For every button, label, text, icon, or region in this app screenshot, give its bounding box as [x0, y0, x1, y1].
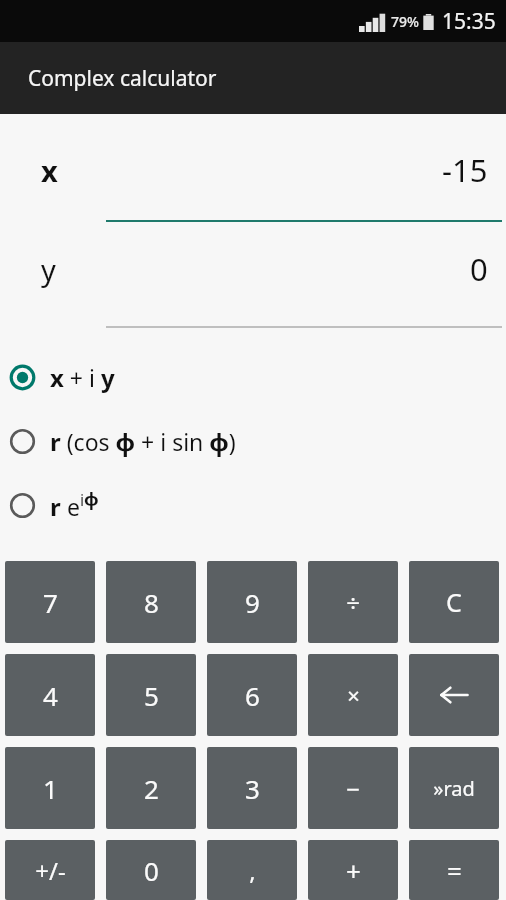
staticText: 0 — [144, 853, 159, 888]
staticText: 8 — [144, 585, 159, 620]
staticText: 2 — [144, 771, 159, 806]
staticText: 3 — [245, 771, 260, 806]
button[interactable]: Minus — [308, 747, 398, 829]
button[interactable]: 3 — [207, 747, 297, 829]
staticText: y — [41, 250, 56, 289]
button[interactable]: r (cos φ + i sin φ) — [0, 409, 506, 473]
staticText: = — [447, 853, 462, 888]
staticText: C — [446, 585, 462, 619]
button[interactable]: 0 — [106, 840, 196, 900]
button[interactable]: r eiφ — [0, 473, 506, 537]
button[interactable]: 9 — [207, 561, 297, 643]
button[interactable]: y — [0, 222, 506, 328]
staticText: -15 — [442, 149, 488, 191]
button[interactable]: Plus — [308, 840, 398, 900]
staticText: x + i y — [50, 361, 115, 394]
button[interactable]: Toggle sign — [5, 840, 95, 900]
button[interactable]: 4 — [5, 654, 95, 736]
staticText: Complex calculator — [28, 64, 217, 93]
button[interactable]: Clear — [409, 561, 499, 643]
staticText: 79% — [391, 12, 419, 31]
button[interactable]: Multiply — [308, 654, 398, 736]
staticText: − — [346, 772, 360, 805]
button[interactable]: Backspace — [409, 654, 499, 736]
button[interactable]: 8 — [106, 561, 196, 643]
staticText: r eiφ — [50, 487, 99, 523]
button[interactable]: 1 — [5, 747, 95, 829]
staticText: 15:35 — [442, 7, 496, 36]
staticText: 5 — [144, 678, 159, 713]
staticText: 4 — [43, 678, 58, 713]
button[interactable]: 6 — [207, 654, 297, 736]
button[interactable]: Equals — [409, 840, 499, 900]
staticText: 6 — [245, 678, 260, 713]
staticText: »rad — [433, 775, 475, 802]
staticText: 0 — [470, 248, 488, 290]
staticText: 7 — [43, 585, 58, 620]
staticText: 1 — [43, 771, 58, 806]
staticText: 9 — [245, 585, 260, 620]
staticText: x — [41, 151, 58, 190]
staticText: + — [346, 853, 361, 888]
staticText: , — [249, 854, 256, 887]
button[interactable]: 5 — [106, 654, 196, 736]
button[interactable]: x + i y — [0, 345, 506, 409]
staticText: +/- — [35, 854, 66, 887]
button[interactable]: Divide — [308, 561, 398, 643]
staticText: × — [347, 680, 360, 710]
staticText: r (cos φ + i sin φ) — [50, 425, 236, 458]
button[interactable]: x — [0, 130, 506, 222]
button[interactable]: Decimal separator — [207, 840, 297, 900]
button[interactable]: 2 — [106, 747, 196, 829]
button[interactable]: Convert to radians — [409, 747, 499, 829]
staticText: ÷ — [346, 586, 360, 619]
button[interactable]: 7 — [5, 561, 95, 643]
